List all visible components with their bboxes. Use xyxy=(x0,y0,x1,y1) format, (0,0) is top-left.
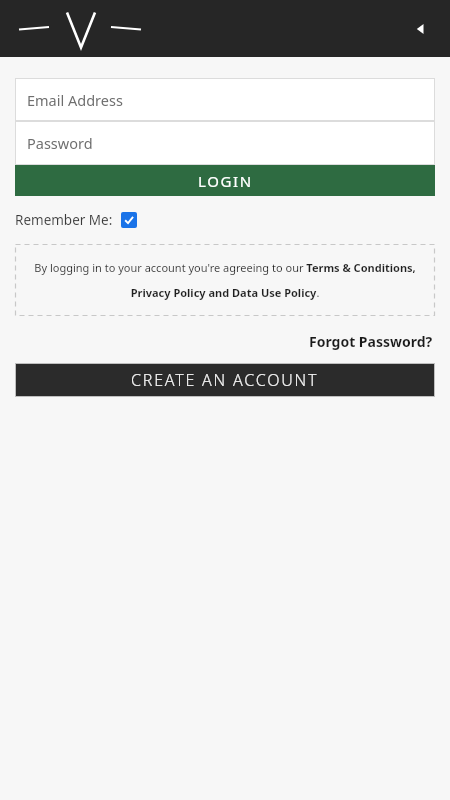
button[interactable]: Password xyxy=(15,121,435,165)
button[interactable]: Forgot Password? xyxy=(307,330,435,353)
staticText: LOGIN xyxy=(198,171,253,191)
button[interactable]: Remember Me: xyxy=(15,208,137,232)
button[interactable]: Home logo xyxy=(15,0,145,57)
button[interactable]: LOGIN xyxy=(15,165,435,196)
button[interactable]: Back xyxy=(402,11,438,47)
staticText: Password xyxy=(27,133,93,153)
other: Remember me, checked xyxy=(121,212,137,228)
staticText: Remember Me: xyxy=(15,211,113,229)
button[interactable]: CREATE AN ACCOUNT xyxy=(15,363,435,397)
staticText: Forgot Password? xyxy=(309,332,433,351)
staticText: Email Address xyxy=(27,90,123,110)
button[interactable]: By logging in to your account you're agr… xyxy=(15,244,435,316)
staticText: CREATE AN ACCOUNT xyxy=(131,369,319,391)
staticText: By logging in to your account you're agr… xyxy=(34,260,416,301)
button[interactable]: Email Address xyxy=(15,78,435,121)
